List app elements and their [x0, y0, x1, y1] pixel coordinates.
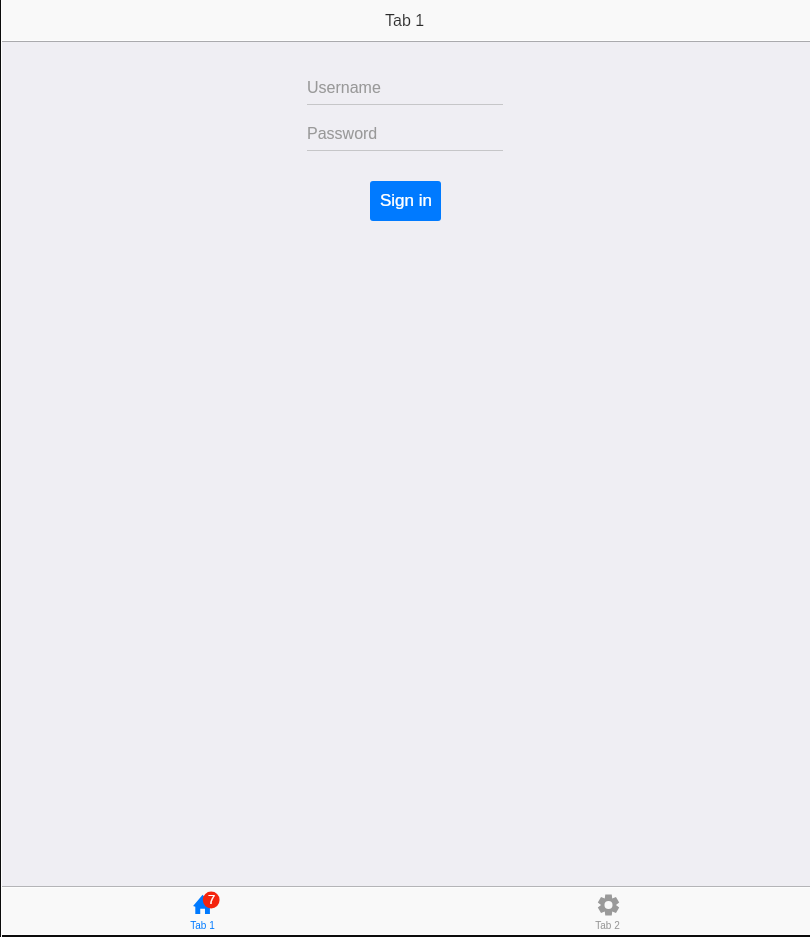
staticText: Tab 1	[385, 12, 425, 30]
staticText: Tab 1	[190, 920, 215, 931]
button[interactable]: Settings	[405, 888, 810, 934]
button[interactable]: Home	[0, 888, 405, 934]
staticText: Username	[307, 79, 381, 97]
staticText: Password	[307, 125, 378, 143]
button[interactable]: Sign in	[370, 181, 441, 221]
staticText: Sign in	[380, 191, 432, 210]
staticText: Tab 2	[595, 920, 620, 931]
staticText: 7	[208, 892, 216, 907]
other: Home	[190, 894, 216, 914]
button[interactable]: Password	[307, 125, 503, 151]
button[interactable]: Username	[307, 79, 503, 105]
other: Settings	[598, 895, 619, 915]
